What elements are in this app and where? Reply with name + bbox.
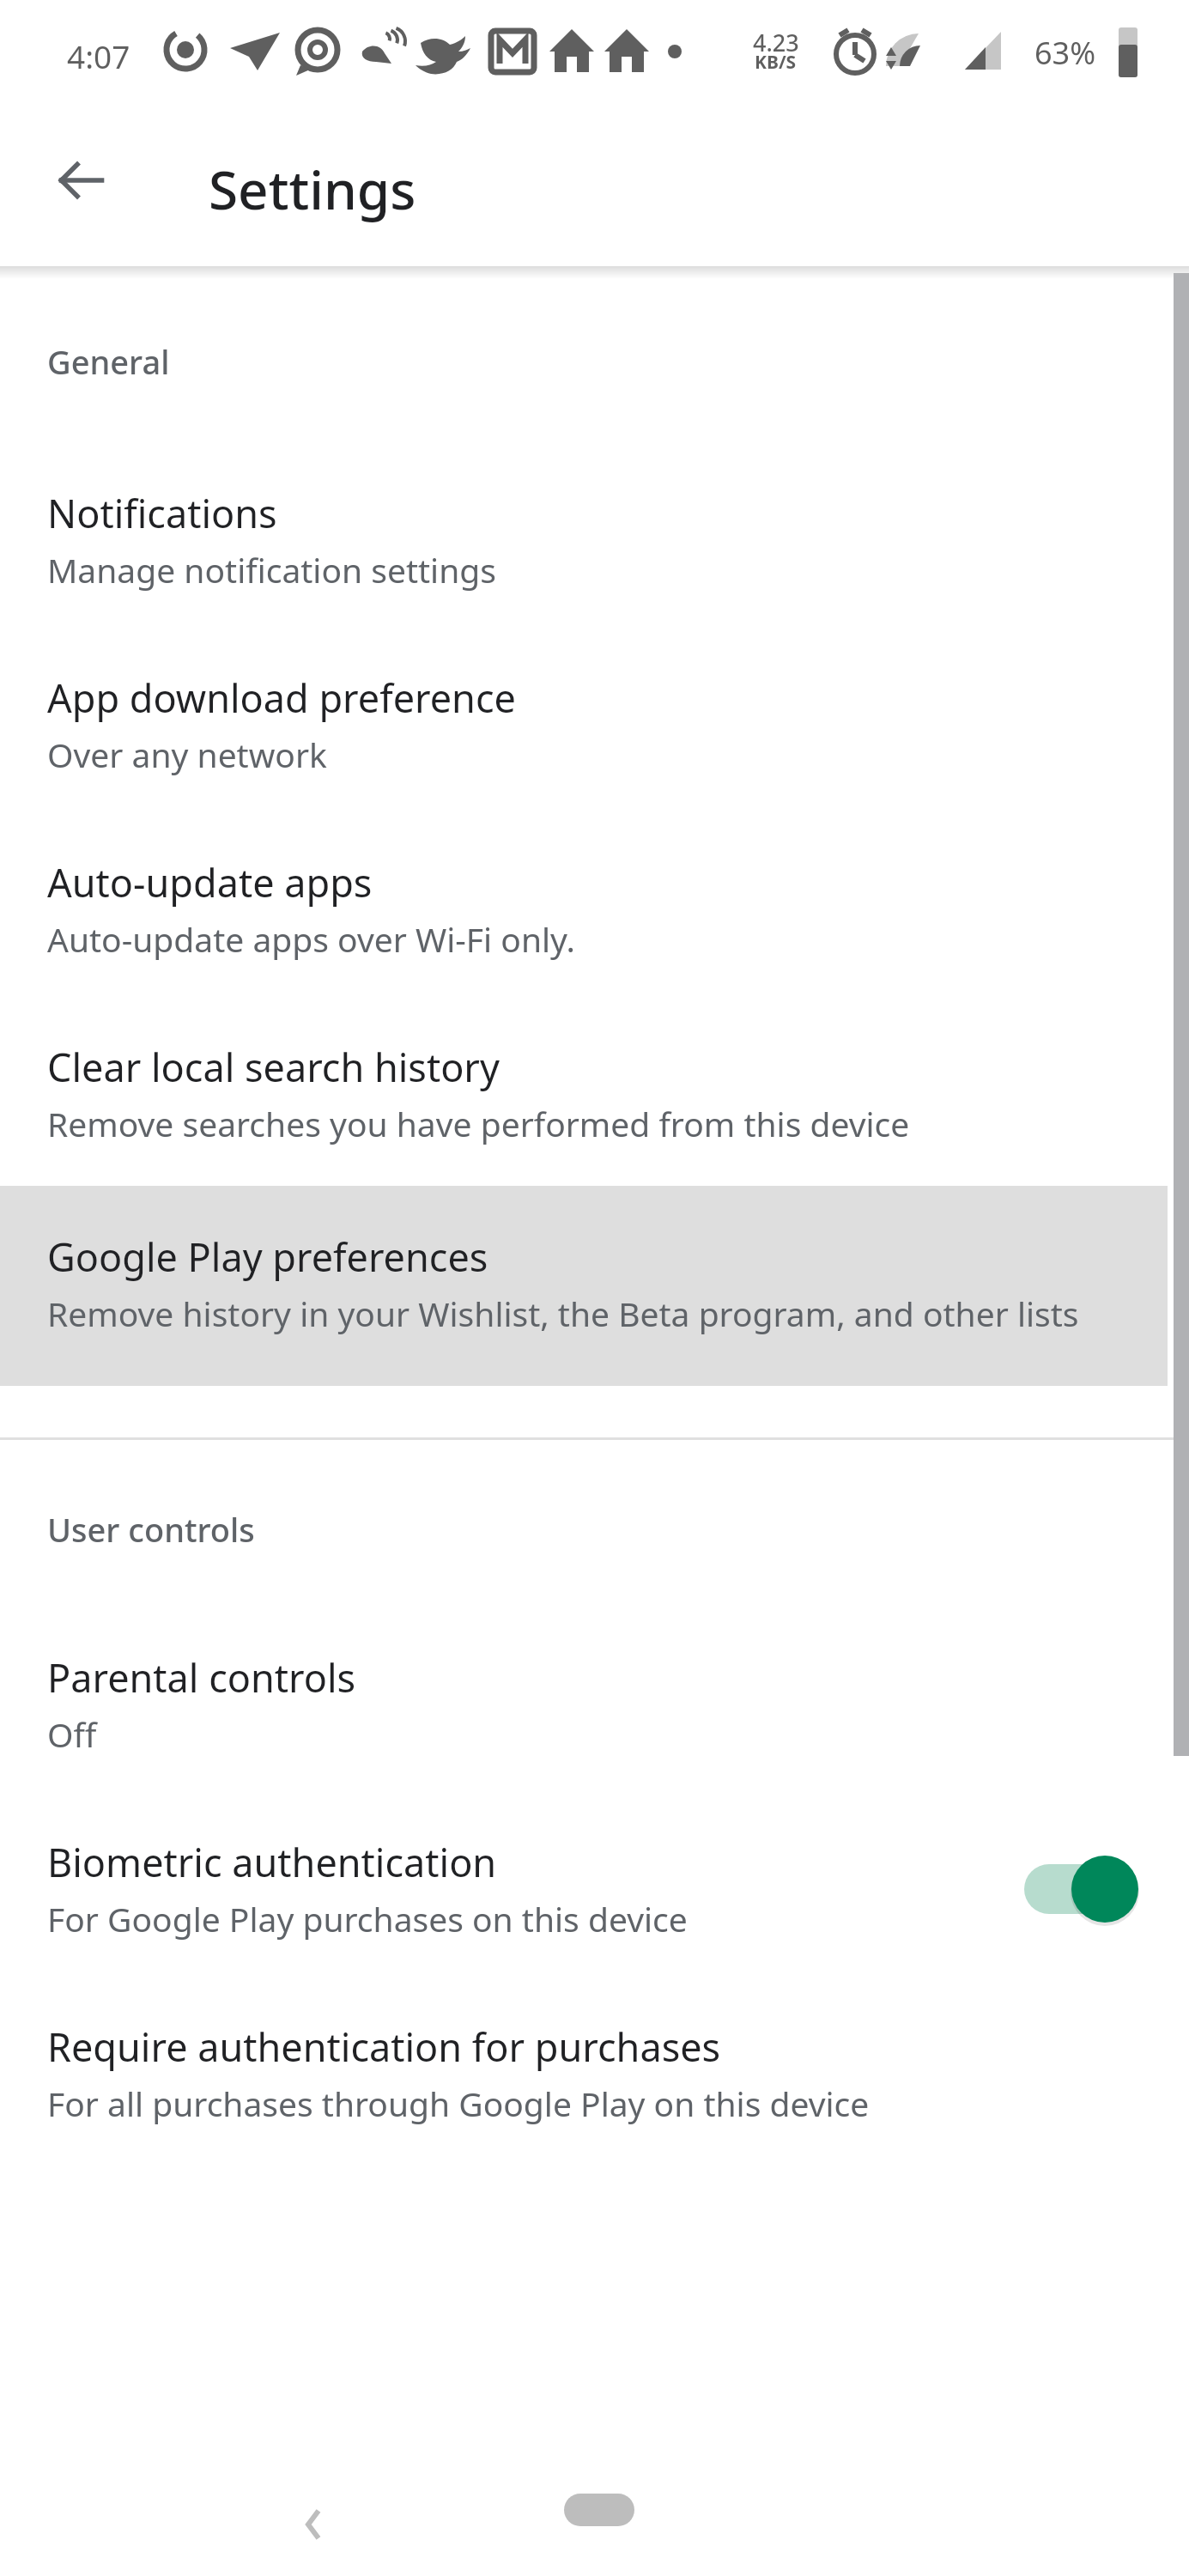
staticText: For all purchases through Google Play on… (47, 2081, 870, 2126)
staticText: 63% (1034, 32, 1096, 74)
staticText: Google Play preferences (47, 1230, 488, 1283)
staticText: 4.23 (753, 27, 799, 58)
button[interactable]: Auto-update apps (0, 817, 1189, 1001)
button[interactable]: Back (34, 133, 129, 228)
staticText: Over any network (47, 732, 327, 777)
staticText: Parental controls (47, 1651, 356, 1704)
button[interactable]: Biometric authentication (0, 1796, 1189, 1981)
staticText: Auto-update apps (47, 856, 373, 908)
staticText: Auto-update apps over Wi-Fi only. (47, 916, 575, 962)
staticText: General (47, 339, 170, 384)
staticText: Remove searches you have performed from … (47, 1101, 910, 1146)
staticText: Settings (209, 153, 416, 225)
button[interactable]: Home (543, 2469, 655, 2550)
button[interactable]: Biometric authentication toggle (1009, 1848, 1137, 1930)
staticText: For Google Play purchases on this device (47, 1896, 688, 1941)
staticText: Manage notification settings (47, 547, 496, 592)
button[interactable]: Parental controls (0, 1612, 1189, 1796)
staticText: Off (47, 1711, 97, 1757)
staticText: Remove history in your Wishlist, the Bet… (47, 1291, 1079, 1336)
staticText: User controls (47, 1507, 255, 1552)
button[interactable]: Back (262, 2473, 365, 2576)
staticText: Biometric authentication (47, 1836, 497, 1888)
staticText: Clear local search history (47, 1041, 500, 1093)
button[interactable]: Google Play preferences (0, 1186, 1168, 1386)
button[interactable]: Clear local search history (0, 1001, 1189, 1186)
staticText: App download preference (47, 671, 516, 724)
staticText: Require authentication for purchases (47, 2020, 721, 2073)
staticText: KB/S (755, 50, 797, 75)
button[interactable]: Notifications (0, 447, 1189, 632)
staticText: Notifications (47, 487, 277, 539)
staticText: 4:07 (67, 34, 130, 77)
button[interactable]: Require authentication for purchases (0, 1981, 1189, 2166)
button[interactable]: App download preference (0, 632, 1189, 817)
